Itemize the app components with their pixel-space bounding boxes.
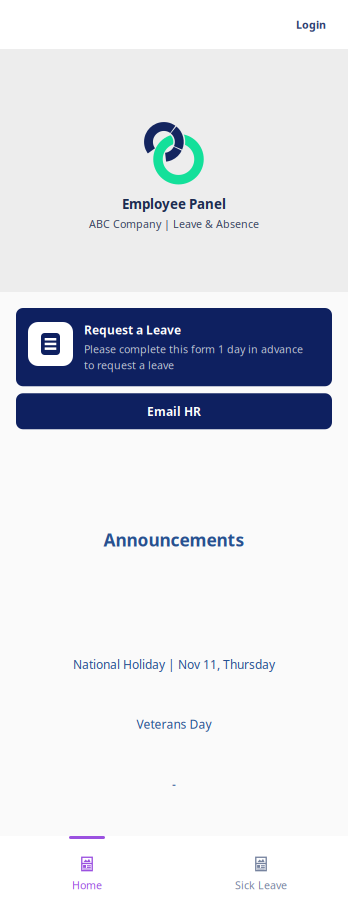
- staticText: ABC Company | Leave & Absence: [89, 217, 259, 231]
- staticText: National Holiday | Nov 11, Thursday: [73, 656, 275, 672]
- staticText: -: [172, 776, 176, 792]
- staticText: Sick Leave: [235, 878, 287, 892]
- button[interactable]: Login: [286, 9, 336, 40]
- staticText: Announcements: [103, 528, 244, 551]
- staticText: Email HR: [147, 403, 201, 419]
- staticText: Request a Leave: [84, 322, 181, 338]
- button[interactable]: Email HR: [16, 393, 332, 429]
- button[interactable]: Home: [0, 836, 174, 916]
- button[interactable]: Request a Leave: [16, 308, 332, 386]
- staticText: Please complete this form 1 day in advan…: [84, 342, 303, 372]
- button[interactable]: Sick Leave: [174, 836, 348, 916]
- staticText: Home: [72, 878, 102, 892]
- staticText: Employee Panel: [122, 195, 226, 213]
- staticText: Login: [296, 17, 326, 32]
- staticText: Veterans Day: [136, 716, 211, 732]
